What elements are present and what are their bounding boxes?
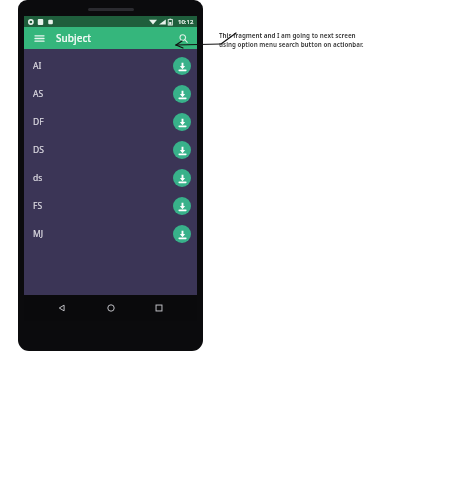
button[interactable]: Download DF bbox=[173, 113, 191, 131]
button[interactable]: Back bbox=[52, 298, 72, 318]
button[interactable]: Home bbox=[101, 298, 121, 318]
button[interactable]: Recent apps bbox=[149, 298, 169, 318]
button[interactable]: Search bbox=[175, 30, 191, 46]
button[interactable]: Download ds bbox=[173, 169, 191, 187]
button[interactable]: MJ bbox=[24, 220, 197, 248]
button[interactable]: AI bbox=[24, 52, 197, 80]
staticText: Subject bbox=[56, 31, 92, 45]
staticText: DF bbox=[33, 116, 44, 128]
button[interactable]: FS bbox=[24, 192, 197, 220]
staticText: AI bbox=[33, 60, 42, 72]
button[interactable]: ds bbox=[24, 164, 197, 192]
button[interactable]: Download MJ bbox=[173, 225, 191, 243]
button[interactable]: Open navigation drawer bbox=[31, 30, 47, 46]
button[interactable]: DF bbox=[24, 108, 197, 136]
button[interactable]: Download FS bbox=[173, 197, 191, 215]
staticText: AS bbox=[33, 88, 44, 100]
staticText: This fragment and I am going to next scr… bbox=[219, 31, 369, 49]
staticText: MJ bbox=[33, 228, 44, 240]
button[interactable]: Download DS bbox=[173, 141, 191, 159]
button[interactable]: Download AI bbox=[173, 57, 191, 75]
staticText: ds bbox=[33, 172, 43, 184]
button[interactable]: Download AS bbox=[173, 85, 191, 103]
button[interactable]: AS bbox=[24, 80, 197, 108]
staticText: DS bbox=[33, 144, 44, 156]
button[interactable]: DS bbox=[24, 136, 197, 164]
staticText: 10:12 bbox=[178, 18, 194, 26]
staticText: FS bbox=[33, 200, 43, 212]
